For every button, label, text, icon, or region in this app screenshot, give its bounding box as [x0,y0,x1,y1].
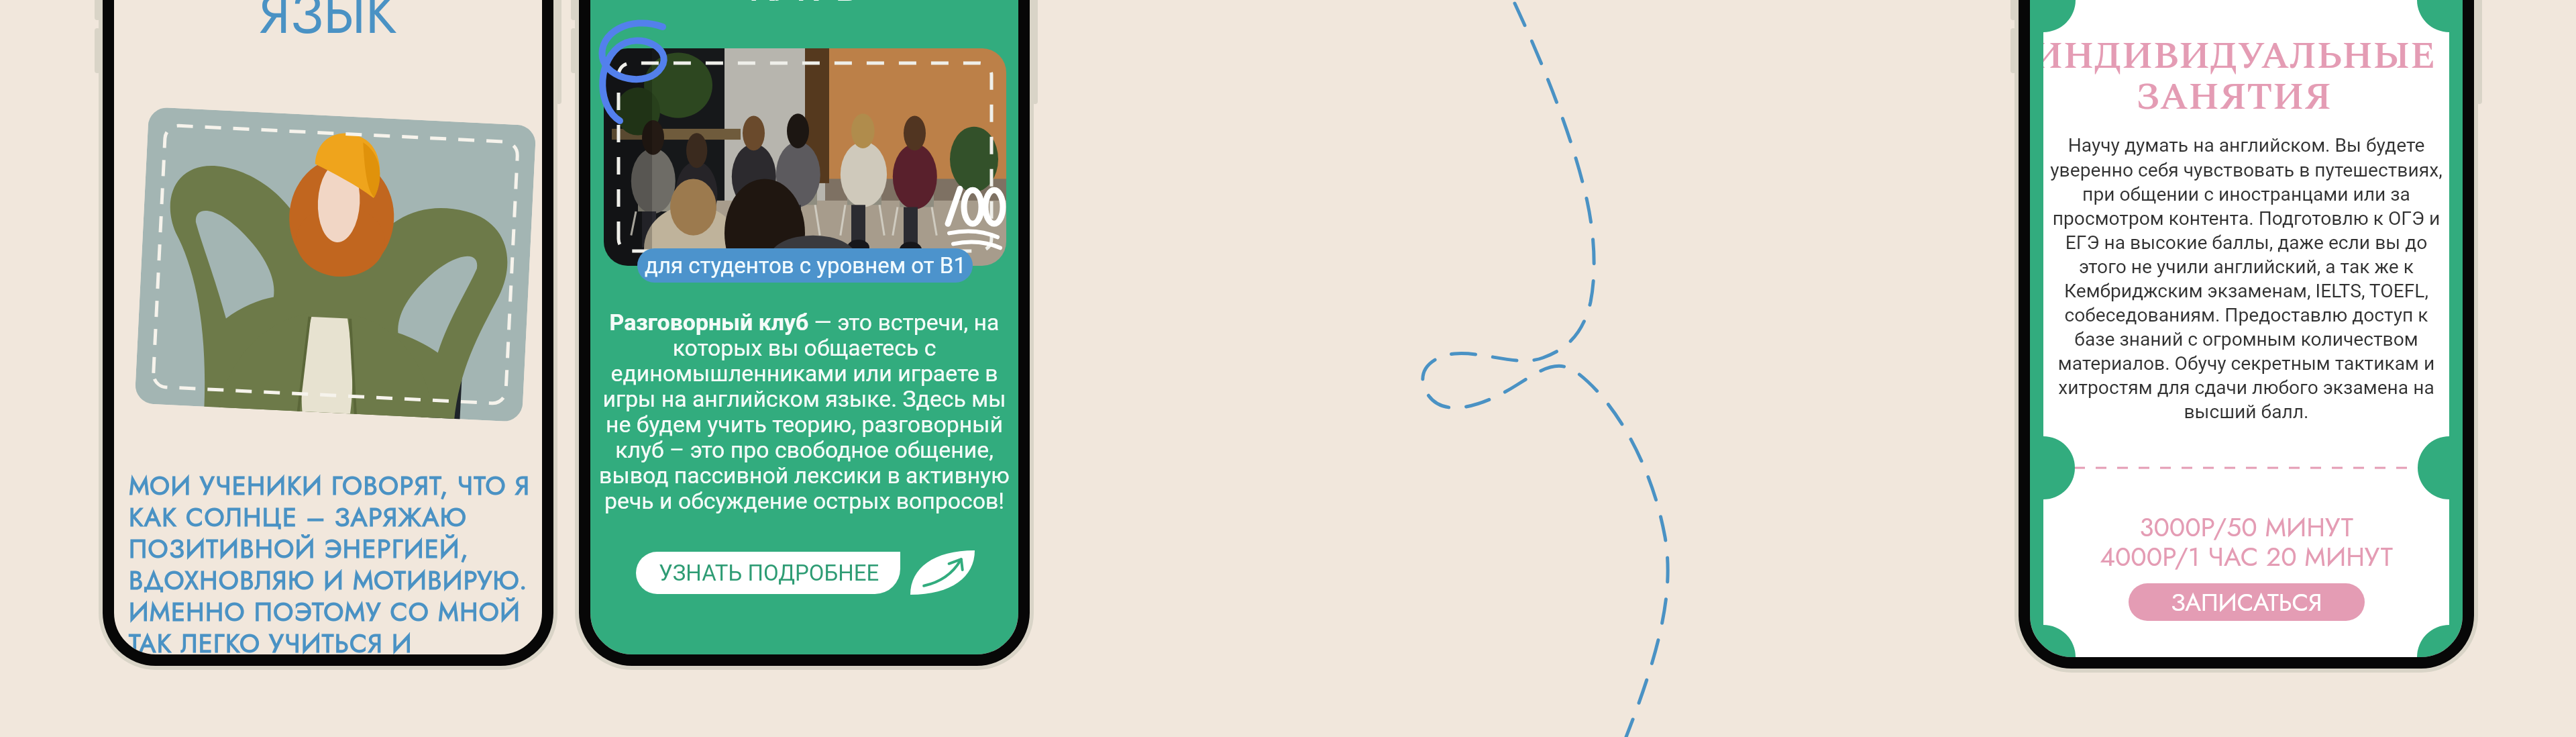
staticText: МОИ УЧЕНИКИ ГОВОРЯТ, ЧТО Я КАК СОЛНЦЕ – … [129,467,531,654]
staticText: КЛУБ [590,0,1018,19]
staticText: Научу думать на английском. Вы будете ув… [2045,134,2448,423]
button[interactable]: Подробнее [910,550,975,595]
button[interactable]: для студентов с уровнем от B1 [637,248,973,283]
button[interactable]: ЗАПИСАТЬСЯ [2129,583,2365,621]
staticText: Разговорный клуб — это встречи, на котор… [593,309,1016,514]
staticText: ЗАПИСАТЬСЯ [2171,585,2322,620]
staticText: для студентов с уровнем от B1 [645,252,966,279]
staticText: 3000Р/50 МИНУТ 4000Р/1 ЧАС 20 МИНУТ [2043,508,2449,576]
staticText: ЯЗЫК [114,0,542,53]
staticText: ИНДИВИДУАЛЬНЫЕ ЗАНЯТИЯ [2043,28,2449,126]
staticText: УЗНАТЬ ПОДРОБНЕЕ [659,560,879,586]
button[interactable]: УЗНАТЬ ПОДРОБНЕЕ [636,552,900,594]
